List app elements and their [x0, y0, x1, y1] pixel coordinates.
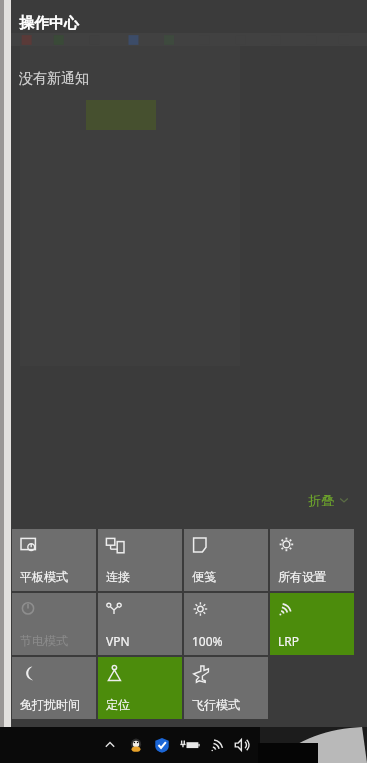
staticText: 免打扰时间	[20, 697, 80, 712]
button[interactable]: 网络	[208, 735, 228, 755]
button[interactable]: 音量	[232, 735, 252, 755]
staticText: 连接	[106, 569, 130, 584]
button[interactable]: 所有设置	[270, 529, 354, 591]
button[interactable]: LRP	[270, 593, 354, 655]
staticText: 100%	[192, 633, 223, 649]
button[interactable]: 安全中心	[152, 735, 172, 755]
button[interactable]: 便笺	[184, 529, 268, 591]
staticText: 没有新通知	[19, 70, 89, 88]
staticText: 节电模式	[20, 633, 68, 648]
button[interactable]: QQ	[126, 735, 146, 755]
staticText: 飞行模式	[192, 697, 240, 712]
staticText: 便笺	[192, 569, 216, 584]
button[interactable]: 平板模式	[12, 529, 96, 591]
staticText: 平板模式	[20, 569, 68, 584]
staticText: LRP	[278, 633, 300, 649]
button[interactable]: 电源	[178, 735, 202, 755]
button[interactable]: VPN	[98, 593, 182, 655]
staticText: 定位	[106, 697, 130, 712]
staticText: 操作中心	[19, 14, 79, 33]
button[interactable]: 免打扰时间	[12, 657, 96, 719]
staticText: 所有设置	[278, 569, 326, 584]
staticText: 折叠	[308, 492, 334, 508]
button[interactable]: 连接	[98, 529, 182, 591]
button[interactable]: 100%	[184, 593, 268, 655]
button[interactable]: 节电模式	[12, 593, 96, 655]
staticText: VPN	[106, 633, 130, 649]
button[interactable]: 飞行模式	[184, 657, 268, 719]
button[interactable]: 显示隐藏的图标	[100, 735, 120, 755]
button[interactable]: 定位	[98, 657, 182, 719]
button[interactable]: 折叠	[306, 490, 352, 510]
